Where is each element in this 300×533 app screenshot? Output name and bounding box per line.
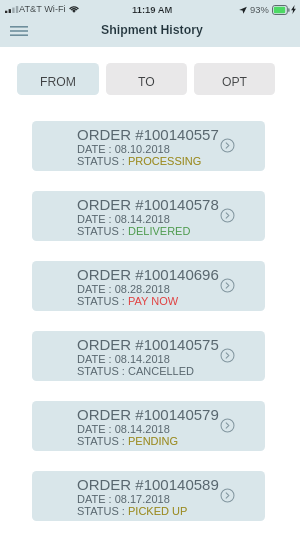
button[interactable]: ORDER #100140557 bbox=[32, 121, 265, 171]
staticText: DELIVERED bbox=[128, 225, 191, 237]
staticText: TO bbox=[138, 75, 155, 89]
staticText: DATE : 08.28.2018 bbox=[77, 283, 170, 295]
button[interactable]: Menu bbox=[3, 20, 34, 42]
staticText: PAY NOW bbox=[128, 295, 179, 307]
staticText: DATE : 08.17.2018 bbox=[77, 493, 170, 505]
button[interactable]: ORDER #100140575 bbox=[32, 331, 265, 381]
staticText: CANCELLED bbox=[128, 365, 195, 377]
staticText: OPT bbox=[222, 75, 248, 89]
staticText: ORDER #100140575 bbox=[77, 336, 219, 353]
staticText: DATE : 08.14.2018 bbox=[77, 423, 170, 435]
staticText: FROM bbox=[40, 75, 76, 89]
staticText: 11:19 AM bbox=[132, 4, 173, 15]
staticText: DATE : 08.10.2018 bbox=[77, 143, 170, 155]
staticText: DATE : 08.14.2018 bbox=[77, 353, 170, 365]
staticText: STATUS : bbox=[77, 225, 128, 237]
staticText: STATUS : bbox=[77, 155, 128, 167]
button[interactable]: FROM bbox=[17, 63, 99, 95]
button[interactable]: OPT bbox=[194, 63, 275, 95]
staticText: PICKED UP bbox=[128, 505, 188, 517]
button[interactable]: View order details bbox=[220, 208, 235, 223]
staticText: DATE : 08.14.2018 bbox=[77, 213, 170, 225]
staticText: ORDER #100140589 bbox=[77, 476, 219, 493]
staticText: ORDER #100140557 bbox=[77, 126, 219, 143]
staticText: ORDER #100140696 bbox=[77, 266, 219, 283]
staticText: PROCESSING bbox=[128, 155, 202, 167]
button[interactable]: ORDER #100140696 bbox=[32, 261, 265, 311]
staticText: ORDER #100140579 bbox=[77, 406, 219, 423]
button[interactable]: View order details bbox=[220, 488, 235, 503]
button[interactable]: ORDER #100140589 bbox=[32, 471, 265, 521]
button[interactable]: ORDER #100140579 bbox=[32, 401, 265, 451]
staticText: 93% bbox=[250, 4, 269, 15]
button[interactable]: ORDER #100140578 bbox=[32, 191, 265, 241]
button[interactable]: TO bbox=[106, 63, 187, 95]
button[interactable]: View order details bbox=[220, 278, 235, 293]
staticText: STATUS : bbox=[77, 295, 128, 307]
staticText: ORDER #100140578 bbox=[77, 196, 219, 213]
staticText: Shipment History bbox=[101, 23, 203, 37]
button[interactable]: View order details bbox=[220, 138, 235, 153]
button[interactable]: View order details bbox=[220, 418, 235, 433]
staticText: STATUS : bbox=[77, 365, 128, 377]
staticText: AT&T Wi-Fi bbox=[19, 4, 66, 14]
button[interactable]: View order details bbox=[220, 348, 235, 363]
staticText: PENDING bbox=[128, 435, 179, 447]
staticText: STATUS : bbox=[77, 505, 128, 517]
staticText: STATUS : bbox=[77, 435, 128, 447]
